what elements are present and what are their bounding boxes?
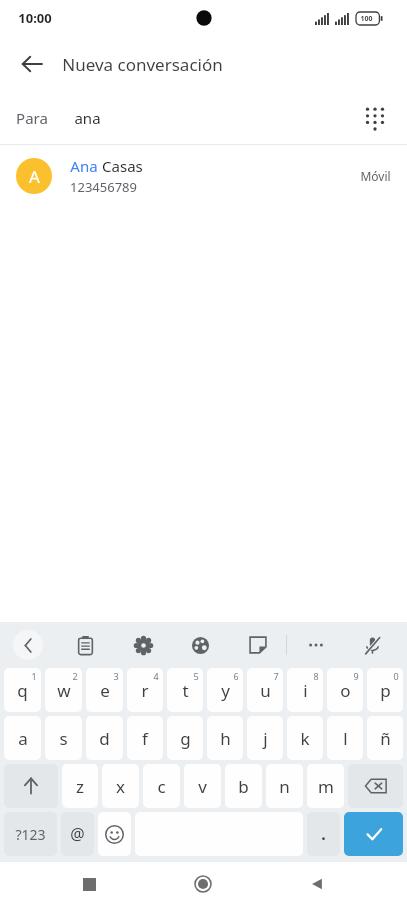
staticText: 10:00 bbox=[18, 9, 52, 27]
staticText: Casas bbox=[98, 156, 143, 176]
staticText: ñ bbox=[380, 727, 391, 750]
button[interactable]: f bbox=[127, 716, 163, 760]
staticText: w bbox=[57, 679, 71, 702]
button[interactable]: Más opciones bbox=[287, 622, 344, 668]
staticText: 100 bbox=[360, 14, 373, 24]
button[interactable]: w bbox=[45, 668, 82, 712]
button[interactable]: Micrófono desactivado bbox=[344, 622, 401, 668]
button[interactable]: @ bbox=[61, 812, 94, 856]
button[interactable]: Atrás bbox=[293, 862, 341, 906]
button[interactable]: p bbox=[367, 668, 403, 712]
button[interactable]: Portapapeles bbox=[56, 622, 114, 668]
staticText: u bbox=[260, 679, 271, 702]
staticText: 0 bbox=[393, 670, 399, 682]
staticText: 7 bbox=[273, 670, 279, 682]
button[interactable]: i bbox=[287, 668, 323, 712]
button[interactable]: n bbox=[266, 764, 303, 808]
button[interactable]: Atrás bbox=[0, 622, 56, 668]
button[interactable]: . bbox=[307, 812, 340, 856]
staticText: s bbox=[59, 727, 68, 750]
staticText: d bbox=[99, 727, 110, 750]
button[interactable]: v bbox=[184, 764, 221, 808]
button[interactable]: Ajustes bbox=[114, 622, 172, 668]
staticText: t bbox=[182, 679, 189, 702]
button[interactable]: e bbox=[86, 668, 123, 712]
staticText: p bbox=[380, 679, 391, 702]
button[interactable]: g bbox=[167, 716, 203, 760]
staticText: i bbox=[303, 679, 308, 702]
button[interactable]: y bbox=[207, 668, 243, 712]
staticText: k bbox=[300, 727, 310, 750]
button[interactable]: k bbox=[287, 716, 323, 760]
button[interactable]: l bbox=[327, 716, 363, 760]
button[interactable]: x bbox=[102, 764, 139, 808]
staticText: 8 bbox=[313, 670, 319, 682]
button[interactable]: t bbox=[167, 668, 203, 712]
staticText: 3 bbox=[113, 670, 119, 682]
staticText: j bbox=[263, 727, 268, 750]
staticText: c bbox=[157, 775, 166, 798]
staticText: r bbox=[141, 679, 149, 702]
staticText: l bbox=[343, 727, 348, 750]
button[interactable]: Mayúsculas bbox=[4, 764, 58, 808]
button[interactable]: Borrar bbox=[348, 764, 403, 808]
button[interactable]: Atrás bbox=[12, 44, 52, 84]
staticText: q bbox=[17, 679, 28, 702]
staticText: ana bbox=[74, 108, 101, 128]
button[interactable]: d bbox=[86, 716, 123, 760]
button[interactable]: Enviar bbox=[344, 812, 403, 856]
button[interactable]: j bbox=[247, 716, 283, 760]
staticText: 4 bbox=[153, 670, 159, 682]
staticText: x bbox=[116, 775, 125, 798]
button[interactable]: u bbox=[247, 668, 283, 712]
staticText: @ bbox=[70, 823, 85, 845]
staticText: 1 bbox=[31, 670, 37, 682]
staticText: 2 bbox=[72, 670, 78, 682]
button[interactable]: Temas bbox=[172, 622, 229, 668]
staticText: y bbox=[221, 679, 230, 702]
button[interactable]: m bbox=[307, 764, 344, 808]
button[interactable]: s bbox=[45, 716, 82, 760]
staticText: n bbox=[279, 775, 290, 798]
button[interactable]: c bbox=[143, 764, 180, 808]
staticText: a bbox=[18, 727, 28, 750]
staticText: g bbox=[180, 727, 191, 750]
staticText: Ana bbox=[70, 156, 98, 176]
staticText: A bbox=[29, 165, 40, 188]
button[interactable]: o bbox=[327, 668, 363, 712]
staticText: 123456789 bbox=[70, 178, 137, 196]
button[interactable]: A bbox=[0, 145, 407, 207]
staticText: v bbox=[198, 775, 207, 798]
staticText: . bbox=[321, 823, 326, 845]
staticText: b bbox=[238, 775, 249, 798]
staticText: 9 bbox=[353, 670, 359, 682]
staticText: 6 bbox=[233, 670, 239, 682]
button[interactable]: a bbox=[4, 716, 41, 760]
button[interactable]: Pegatinas bbox=[229, 622, 286, 668]
staticText: Para bbox=[16, 108, 48, 128]
button[interactable]: q bbox=[4, 668, 41, 712]
staticText: Móvil bbox=[360, 168, 391, 184]
button[interactable]: Emoji bbox=[98, 812, 131, 856]
staticText: ?123 bbox=[15, 825, 46, 844]
staticText: Nueva conversación bbox=[62, 53, 223, 76]
button[interactable]: r bbox=[127, 668, 163, 712]
staticText: o bbox=[340, 679, 351, 702]
button[interactable]: ñ bbox=[367, 716, 403, 760]
staticText: e bbox=[100, 679, 110, 702]
button[interactable]: b bbox=[225, 764, 262, 808]
button[interactable]: h bbox=[207, 716, 243, 760]
staticText: z bbox=[76, 775, 84, 798]
button[interactable]: Inicio bbox=[179, 862, 227, 906]
button[interactable]: ?123 bbox=[4, 812, 57, 856]
staticText: 5 bbox=[193, 670, 199, 682]
staticText: m bbox=[318, 775, 334, 798]
staticText: f bbox=[142, 727, 148, 750]
button[interactable]: z bbox=[62, 764, 98, 808]
button[interactable]: Recientes bbox=[65, 862, 113, 906]
staticText: h bbox=[220, 727, 231, 750]
button[interactable]: Teclado de marcación bbox=[353, 96, 397, 140]
